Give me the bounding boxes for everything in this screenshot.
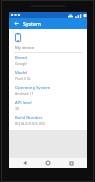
staticText: API level (15, 100, 32, 106)
button[interactable]: Back (18, 158, 32, 168)
staticText: Pixel 3 XL (15, 76, 31, 81)
staticText: 30 (15, 106, 20, 111)
staticText: Google (15, 61, 28, 66)
button[interactable]: Recent apps (64, 158, 78, 168)
staticText: Brand (15, 55, 27, 61)
staticText: System (23, 20, 41, 27)
staticText: Android 11 (15, 91, 34, 96)
staticText: Build Number (15, 115, 43, 121)
staticText: Operating System (15, 85, 51, 91)
button[interactable]: Home (41, 158, 55, 168)
button[interactable]: Operating System (9, 83, 87, 98)
button[interactable]: Model (9, 68, 87, 83)
button[interactable]: Build Number (9, 113, 87, 128)
staticText: My device (15, 45, 35, 51)
button[interactable]: Brand (9, 53, 87, 68)
button[interactable]: API level (9, 98, 87, 113)
staticText: RQ1A.201205.003 (15, 121, 45, 126)
staticText: Model (15, 70, 28, 76)
button[interactable]: Navigate up (12, 19, 21, 28)
